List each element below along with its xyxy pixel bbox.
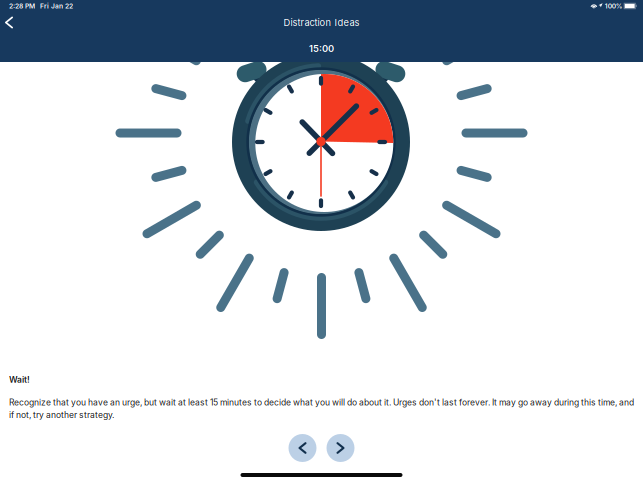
staticText: Wait! <box>9 374 30 385</box>
staticText: Distraction Ideas <box>283 17 359 28</box>
staticText: Recognize that you have an urge, but wai… <box>9 397 634 420</box>
staticText: 15:00 <box>309 43 334 54</box>
button[interactable]: Back <box>0 12 18 32</box>
button[interactable]: Next <box>326 434 354 462</box>
staticText: 2:28 PM <box>9 2 35 10</box>
staticText: Fri Jan 22 <box>40 2 73 10</box>
button[interactable]: Previous <box>288 434 316 462</box>
staticText: 100% <box>605 2 623 10</box>
